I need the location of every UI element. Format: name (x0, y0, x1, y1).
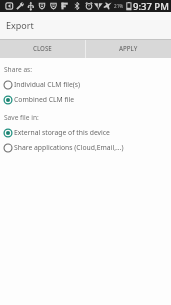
staticText: APPLY (119, 44, 138, 52)
staticText: External storage of this device (14, 128, 110, 137)
staticText: CLOSE (33, 44, 52, 52)
staticText: Combined CLM file (14, 95, 75, 104)
button[interactable]: Combined CLM file (0, 92, 171, 107)
staticText: Export (6, 19, 34, 31)
button[interactable]: Individual CLM file(s) (0, 77, 171, 92)
staticText: 21% (114, 3, 124, 9)
button[interactable]: Share applications (Cloud,Email,...) (0, 140, 171, 155)
button[interactable]: CLOSE (0, 40, 85, 58)
button[interactable]: External storage of this device (0, 125, 171, 140)
staticText: Share as: (4, 65, 33, 74)
staticText: Save file in: (4, 113, 39, 122)
staticText: Individual CLM file(s) (14, 80, 81, 89)
staticText: Share applications (Cloud,Email,...) (14, 143, 124, 152)
staticText: 9:37 PM (133, 0, 169, 12)
button[interactable]: APPLY (86, 40, 171, 58)
